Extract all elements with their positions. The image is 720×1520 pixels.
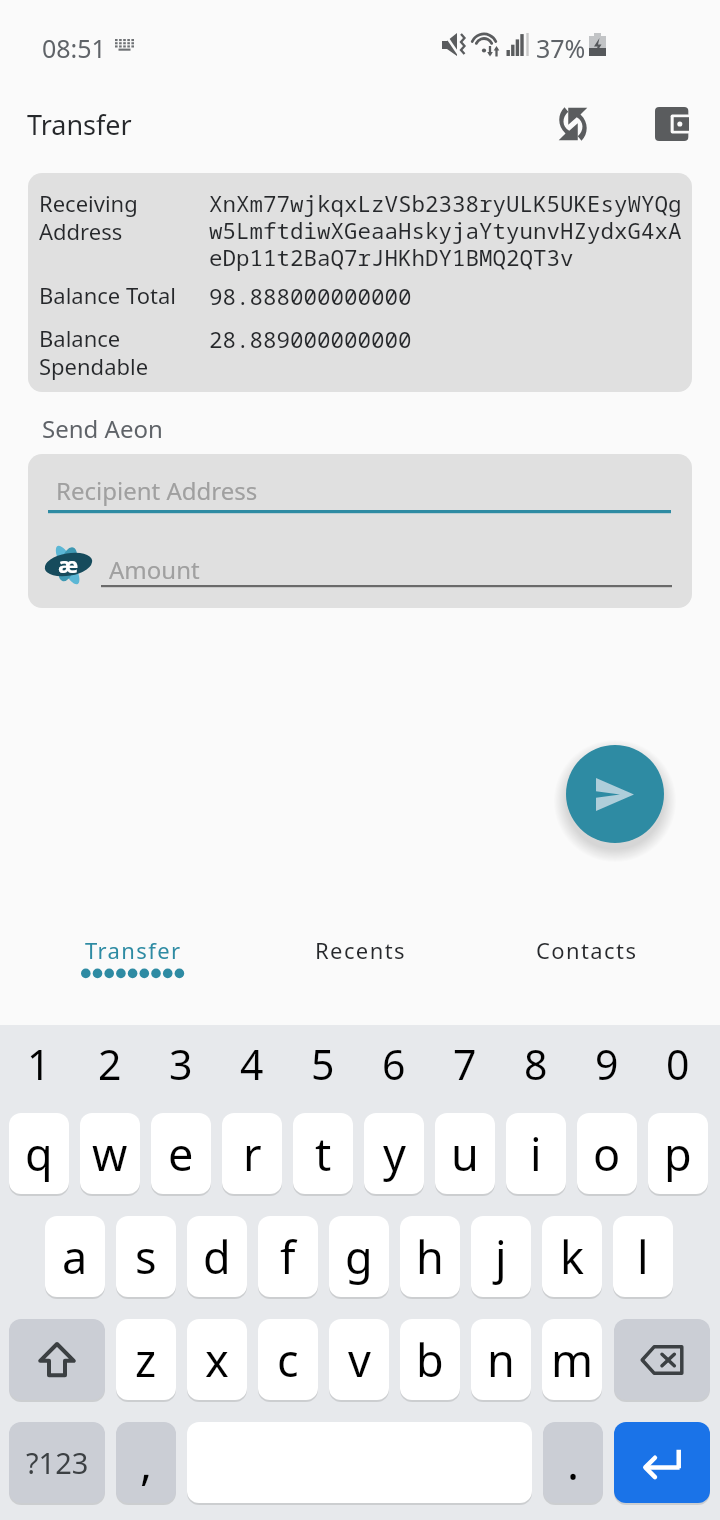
button[interactable]: j [471,1216,531,1297]
button[interactable]: 7 [435,1030,495,1098]
staticText: 3 [169,1036,193,1092]
button[interactable]: 9 [577,1030,637,1098]
staticText: , [140,1432,153,1493]
button[interactable]: d [187,1216,247,1297]
staticText: c [277,1329,299,1390]
button[interactable]: 3 [151,1030,211,1098]
staticText: f [280,1226,296,1287]
button[interactable]: o [577,1113,637,1194]
staticText: Recipient Address [56,474,258,507]
staticText: 2 [98,1036,122,1092]
button[interactable]: 5 [293,1030,353,1098]
button[interactable]: 8 [506,1030,566,1098]
staticText: 37% [536,31,586,65]
staticText: o [593,1123,621,1184]
staticText: Recents [315,935,406,965]
button[interactable]: Enter [614,1422,710,1503]
staticText: Amount [109,553,200,586]
staticText: a [62,1226,88,1287]
button[interactable]: ?123 [9,1422,105,1503]
button[interactable]: e [151,1113,211,1194]
staticText: y [383,1123,406,1184]
staticText: 1 [27,1036,51,1092]
staticText: p [664,1123,692,1184]
button[interactable]: c [258,1319,318,1400]
button[interactable]: s [116,1216,176,1297]
button[interactable]: b [400,1319,460,1400]
staticText: æ [58,549,79,579]
staticText: l [637,1226,649,1287]
button[interactable]: m [542,1319,602,1400]
button[interactable]: a [45,1216,105,1297]
staticText: i [530,1123,542,1184]
button[interactable]: t [293,1113,353,1194]
staticText: 28.889000000000 [209,324,412,355]
staticText: Contacts [536,935,638,965]
staticText: z [135,1329,157,1390]
staticText: e [168,1123,194,1184]
button[interactable]: Backspace [614,1319,710,1400]
staticText: 5 [311,1036,335,1092]
staticText: ?123 [26,1443,89,1482]
staticText: x [205,1329,229,1390]
button[interactable]: g [329,1216,389,1297]
staticText: u [451,1123,479,1184]
button[interactable]: k [542,1216,602,1297]
button[interactable]: f [258,1216,318,1297]
staticText: h [416,1226,444,1287]
staticText: 7 [453,1036,477,1092]
staticText: Transfer [27,106,132,143]
button[interactable]: q [9,1113,69,1194]
button[interactable]: Contacts [474,910,700,996]
button[interactable]: 0 [648,1030,708,1098]
button[interactable]: h [400,1216,460,1297]
staticText: j [495,1226,507,1287]
staticText: Balance Total [39,280,176,310]
button[interactable]: x [187,1319,247,1400]
button[interactable]: l [613,1216,673,1297]
button[interactable]: p [648,1113,708,1194]
button[interactable]: i [506,1113,566,1194]
button[interactable]: Transfer [20,910,246,996]
button[interactable]: u [435,1113,495,1194]
staticText: Balance Spendable [39,323,149,381]
button[interactable]: . [543,1422,603,1503]
button[interactable]: Wallet [639,96,705,152]
staticText: n [487,1329,515,1390]
staticText: XnXm77wjkqxLzVSb2338ryULK5UKEsyWYQg w5Lm… [209,188,682,273]
staticText: 8 [524,1036,548,1092]
button[interactable]: v [329,1319,389,1400]
button[interactable]: Send [566,745,664,843]
staticText: b [416,1329,444,1390]
staticText: w [92,1123,128,1184]
staticText: v [348,1329,371,1390]
button[interactable]: Sync [540,96,606,152]
button[interactable]: , [116,1422,176,1503]
staticText: d [203,1226,231,1287]
staticText: 4 [240,1036,264,1092]
button[interactable]: z [116,1319,176,1400]
staticText: s [135,1226,157,1287]
button[interactable]: r [222,1113,282,1194]
staticText: 0 [666,1036,690,1092]
staticText: Send Aeon [42,412,163,445]
button[interactable]: Shift [9,1319,105,1400]
staticText: r [243,1123,262,1184]
staticText: 08:51 [42,31,106,65]
staticText: k [560,1226,585,1287]
staticText: g [345,1226,373,1287]
button[interactable]: Recents [247,910,473,996]
staticText: 9 [595,1036,619,1092]
staticText: t [315,1123,332,1184]
button[interactable]: 2 [80,1030,140,1098]
button[interactable]: 1 [9,1030,69,1098]
button[interactable]: y [364,1113,424,1194]
staticText: 98.888000000000 [209,281,412,312]
button[interactable]: w [80,1113,140,1194]
button[interactable]: n [471,1319,531,1400]
staticText: Transfer [85,935,182,965]
button[interactable]: 6 [364,1030,424,1098]
button[interactable]: 4 [222,1030,282,1098]
staticText: 6 [382,1036,406,1092]
